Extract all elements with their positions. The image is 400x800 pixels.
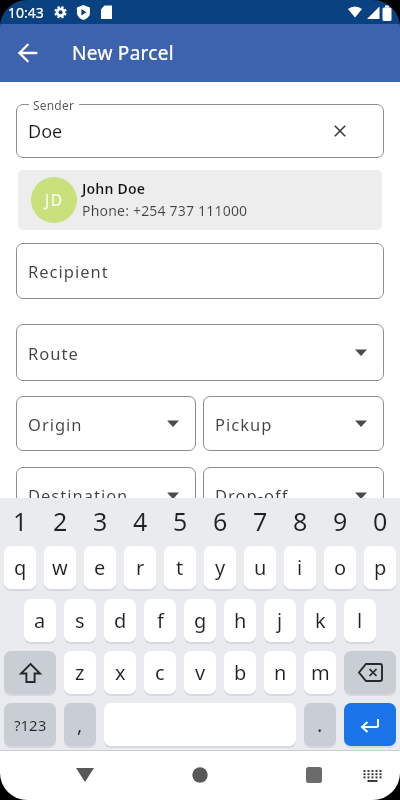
staticText: v [195, 659, 206, 686]
button[interactable]: m [304, 651, 336, 694]
staticText: w [52, 554, 68, 581]
button[interactable]: r [124, 546, 156, 589]
staticText: g [194, 607, 207, 634]
button[interactable]: x [104, 651, 136, 694]
button[interactable]: w [44, 546, 76, 589]
button[interactable] [4, 651, 56, 694]
button[interactable]: p [364, 546, 396, 589]
button[interactable]: , [64, 703, 96, 746]
button[interactable]: 2 [40, 503, 80, 539]
button[interactable]: g [184, 599, 216, 642]
staticText: t [176, 554, 184, 581]
button[interactable]: 4 [120, 503, 160, 539]
staticText: x [115, 659, 126, 686]
button[interactable]: o [324, 546, 356, 589]
staticText: i [297, 554, 303, 581]
button[interactable]: v [184, 651, 216, 694]
button[interactable]: 8 [280, 503, 320, 539]
button[interactable]: j [264, 599, 296, 642]
button[interactable] [181, 756, 219, 794]
button[interactable] [8, 33, 48, 73]
button[interactable]: n [264, 651, 296, 694]
button[interactable]: 9 [320, 503, 360, 539]
staticText: Phone: +254 737 111000 [82, 201, 248, 220]
staticText: 7 [253, 504, 268, 538]
button[interactable]: y [204, 546, 236, 589]
button[interactable]: 5 [160, 503, 200, 539]
staticText: ?123 [14, 715, 47, 735]
button[interactable] [66, 756, 104, 794]
button[interactable]: q [4, 546, 36, 589]
staticText: John Doe [82, 179, 146, 198]
staticText: p [374, 554, 387, 581]
staticText: Destination [28, 484, 129, 506]
staticText: Sender [33, 97, 75, 113]
button[interactable] [344, 651, 396, 694]
staticText: 2 [53, 504, 68, 538]
button[interactable]: i [284, 546, 316, 589]
button[interactable]: 6 [200, 503, 240, 539]
staticText: 1 [13, 504, 28, 538]
button[interactable]: u [244, 546, 276, 589]
staticText: s [75, 607, 85, 634]
button[interactable]: k [304, 599, 336, 642]
staticText: , [77, 711, 83, 738]
staticText: u [254, 554, 267, 581]
button[interactable]: Recipient [16, 243, 384, 299]
button[interactable]: Doe [16, 104, 384, 158]
staticText: h [234, 607, 247, 634]
button[interactable]: Drop-off [203, 467, 384, 523]
staticText: 3 [93, 504, 108, 538]
staticText: f [157, 607, 164, 634]
staticText: r [136, 554, 145, 581]
staticText: Pickup [215, 413, 273, 435]
button[interactable]: 0 [360, 503, 400, 539]
staticText: z [75, 659, 85, 686]
staticText: y [215, 554, 226, 581]
button[interactable]: a [24, 599, 56, 642]
staticText: Recipient [28, 260, 109, 282]
staticText: c [155, 659, 165, 686]
button[interactable]: JD [18, 170, 382, 230]
button[interactable] [354, 758, 390, 794]
staticText: . [317, 711, 323, 738]
button[interactable]: . [304, 703, 336, 746]
staticText: 5 [173, 504, 188, 538]
button[interactable]: b [224, 651, 256, 694]
button[interactable]: e [84, 546, 116, 589]
staticText: k [315, 607, 326, 634]
button[interactable]: t [164, 546, 196, 589]
button[interactable]: s [64, 599, 96, 642]
button[interactable] [295, 756, 333, 794]
staticText: Doe [28, 119, 63, 144]
button[interactable]: Pickup [203, 396, 384, 451]
staticText: 4 [133, 504, 148, 538]
staticText: 9 [333, 504, 348, 538]
staticText: New Parcel [72, 40, 175, 66]
staticText: n [274, 659, 287, 686]
staticText: a [34, 607, 46, 634]
button[interactable]: 7 [240, 503, 280, 539]
staticText: m [311, 659, 330, 686]
staticText: 6 [213, 504, 228, 538]
staticText: b [234, 659, 247, 686]
button[interactable]: z [64, 651, 96, 694]
button[interactable]: 1 [0, 503, 40, 539]
button[interactable]: h [224, 599, 256, 642]
staticText: 10:43 [8, 3, 44, 22]
staticText: 0 [373, 504, 388, 538]
button[interactable]: f [144, 599, 176, 642]
button[interactable] [344, 703, 396, 746]
button[interactable]: c [144, 651, 176, 694]
button[interactable]: Origin [16, 396, 196, 451]
button[interactable]: d [104, 599, 136, 642]
staticText: Origin [28, 413, 83, 435]
button[interactable]: Destination [16, 467, 196, 523]
button[interactable]: l [344, 599, 376, 642]
button[interactable]: ?123 [4, 703, 56, 746]
button[interactable]: 3 [80, 503, 120, 539]
staticText: e [94, 554, 106, 581]
staticText: 8 [293, 504, 308, 538]
button[interactable]: Route [16, 324, 384, 381]
